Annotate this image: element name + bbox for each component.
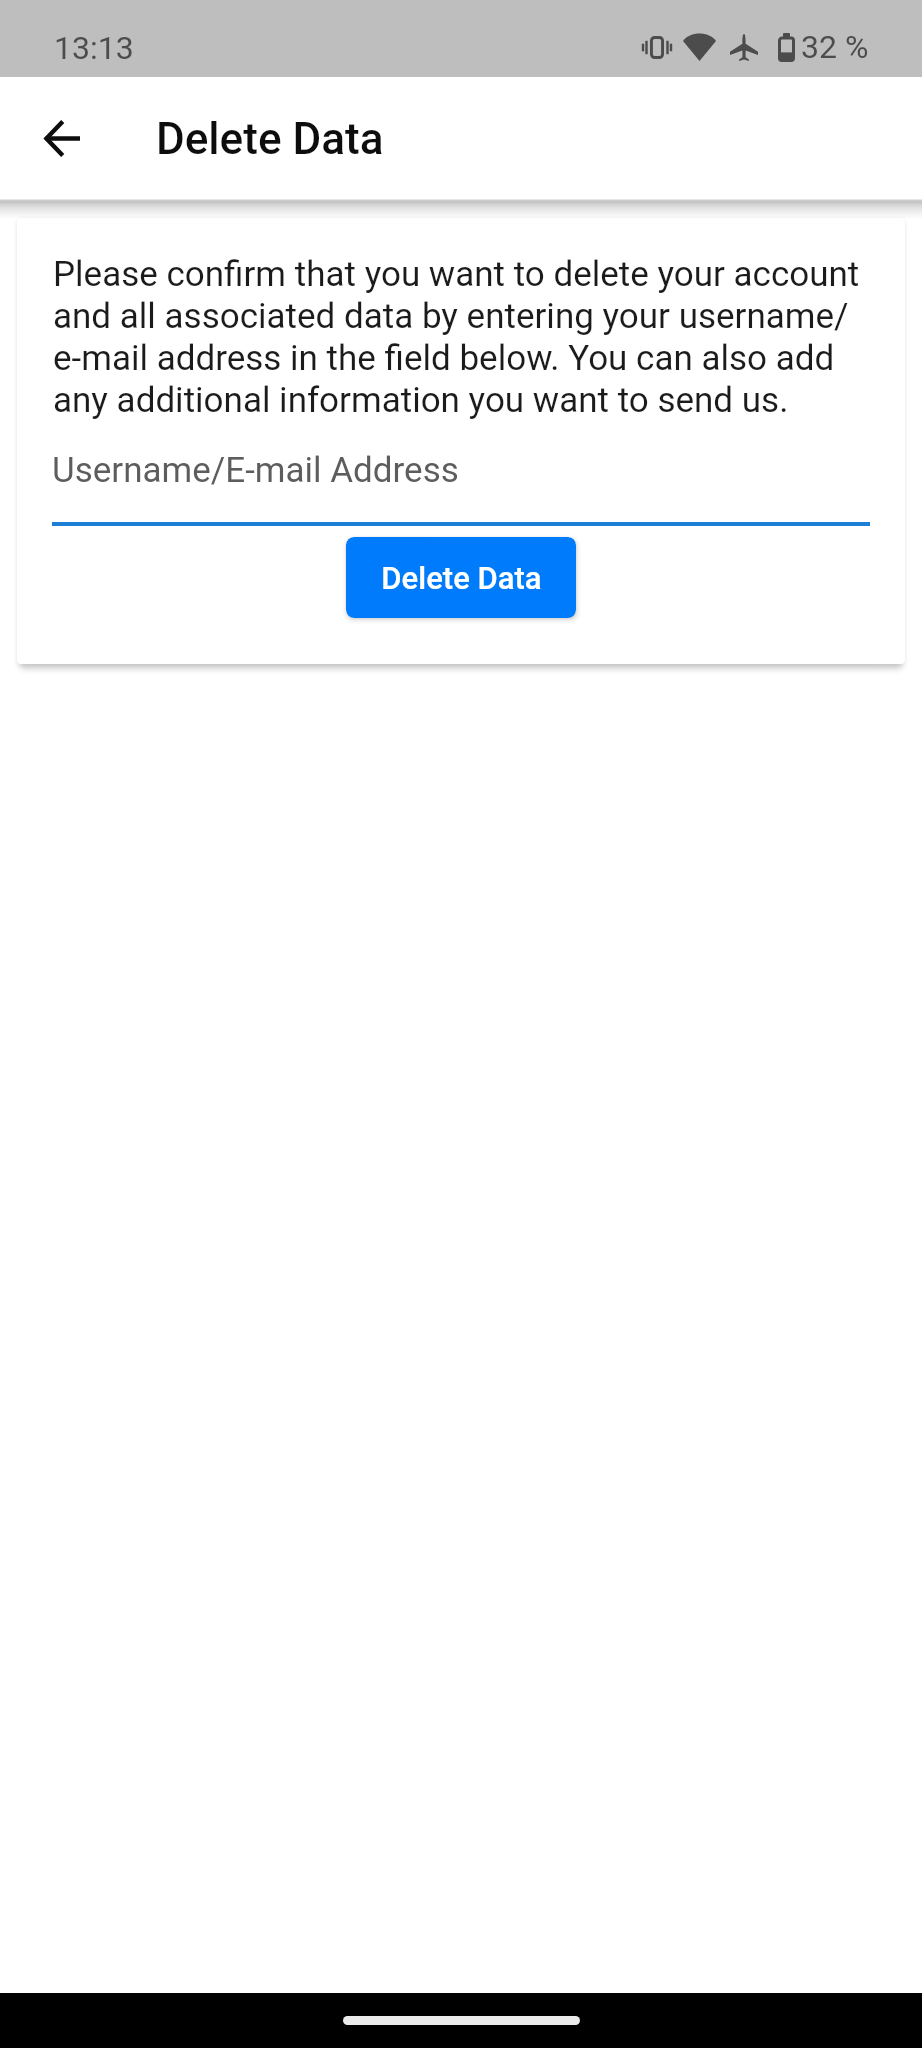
staticText: 13:13 [54, 29, 134, 67]
button[interactable]: Delete Data [346, 537, 576, 618]
staticText: Delete Data [156, 113, 384, 165]
button[interactable]: Back [18, 94, 106, 182]
staticText: 32 % [801, 28, 869, 66]
button[interactable]: Username/E-mail Address [52, 430, 870, 526]
staticText: Username/E-mail Address [52, 450, 459, 491]
staticText: Please confirm that you want to delete y… [53, 254, 868, 421]
staticText: Delete Data [381, 560, 542, 596]
